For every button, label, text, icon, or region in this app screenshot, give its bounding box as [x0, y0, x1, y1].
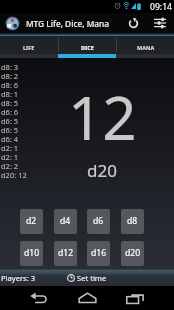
button[interactable]: MANA [117, 36, 174, 54]
staticText: d6: 6 [1, 107, 19, 116]
staticText: d2: 1 [1, 152, 19, 161]
staticText: d6: 5 [1, 116, 19, 125]
staticText: 09:14 [150, 1, 172, 13]
staticText: d4 [60, 215, 71, 227]
staticText: Players: 3 [1, 273, 36, 283]
button[interactable]: d20 [121, 241, 144, 266]
button[interactable]: d12 [54, 241, 77, 266]
button[interactable]: DICE [59, 36, 116, 54]
button[interactable]: d8 [121, 209, 144, 234]
staticText: LIFE [23, 44, 35, 51]
button[interactable]: Settings [146, 13, 174, 33]
staticText: d8 [127, 215, 138, 227]
button[interactable]: Back [25, 286, 52, 310]
staticText: d2 [26, 215, 37, 227]
staticText: d8: 1 [1, 89, 19, 98]
staticText: d2: 1 [1, 143, 19, 152]
staticText: Set time [77, 273, 107, 283]
staticText: d2: 2 [1, 161, 19, 170]
button[interactable]: Refresh [120, 13, 146, 33]
staticText: d16 [91, 247, 107, 259]
staticText: d6: 5 [1, 125, 19, 134]
button[interactable]: d10 [20, 241, 43, 266]
button[interactable]: d6 [87, 209, 110, 234]
staticText: d8: 3 [1, 62, 19, 71]
staticText: MANA [137, 44, 155, 51]
staticText: d8: 2 [1, 71, 19, 80]
staticText: d20: 12 [1, 170, 27, 179]
staticText: DICE [81, 44, 94, 51]
button[interactable]: d16 [87, 241, 110, 266]
button[interactable]: d4 [54, 209, 77, 234]
button[interactable]: Set time [67, 273, 107, 283]
staticText: d20 [125, 247, 141, 259]
button[interactable]: LIFE [0, 36, 58, 54]
button[interactable]: Home [74, 286, 101, 310]
staticText: d6 [93, 215, 104, 227]
button[interactable]: Recents [122, 286, 149, 310]
button[interactable]: d2 [20, 209, 43, 234]
staticText: 12 [68, 76, 137, 158]
staticText: d8: 6 [1, 80, 19, 89]
staticText: d20 [87, 159, 117, 182]
staticText: d10 [24, 247, 40, 259]
staticText: d12 [58, 247, 74, 259]
staticText: d8: 5 [1, 98, 19, 107]
staticText: d6: 4 [1, 134, 19, 143]
staticText: MTG Life, Dice, Mana [26, 18, 109, 29]
